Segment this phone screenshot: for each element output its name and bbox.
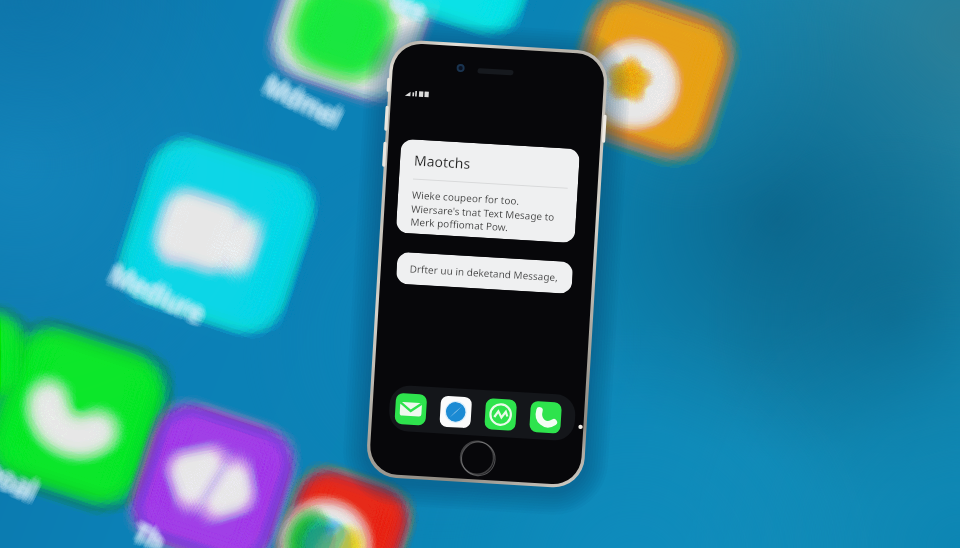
staticText: boal: [0, 456, 44, 511]
staticText: Mediure: [104, 257, 209, 331]
staticText: Mediure: [106, 250, 211, 324]
staticText: Th: [131, 514, 172, 548]
staticText: Mdmel: [261, 62, 347, 127]
button[interactable]: Drfter uu in deketand Message,: [396, 252, 573, 294]
staticText: ore: [389, 0, 431, 23]
staticText: Mediure: [106, 260, 211, 334]
staticText: Th: [126, 512, 167, 548]
staticText: boal: [0, 455, 42, 510]
staticText: ore: [385, 0, 427, 27]
staticText: boal: [0, 453, 48, 508]
staticText: Mediure: [104, 251, 209, 325]
staticText: ore: [385, 0, 427, 24]
staticText: Th: [132, 512, 173, 548]
staticText: boal: [0, 456, 40, 511]
staticText: Mediure: [103, 256, 208, 330]
staticText: boal: [0, 450, 39, 505]
staticText: Mdmel: [259, 69, 345, 134]
button[interactable]: Mdmel: [0, 0, 960, 548]
staticText: Mediure: [102, 252, 207, 326]
staticText: boal: [0, 447, 42, 502]
staticText: Mdmel: [258, 68, 344, 133]
staticText: ore: [388, 0, 430, 22]
staticText: Mdmel: [264, 64, 350, 129]
button[interactable]: Maotchs: [396, 139, 580, 243]
staticText: Mdmel: [255, 71, 341, 136]
staticText: Drfter uu in deketand Message,: [409, 261, 559, 284]
staticText: ore: [389, 0, 431, 27]
staticText: ore: [386, 0, 428, 29]
staticText: Mediure: [110, 257, 215, 331]
staticText: Mdmel: [259, 63, 345, 128]
staticText: Th: [132, 518, 173, 548]
staticText: Mediure: [102, 260, 207, 334]
staticText: boal: [0, 446, 44, 501]
staticText: ore: [391, 0, 433, 29]
staticText: Th: [129, 511, 170, 548]
staticText: Mdmel: [264, 71, 350, 136]
staticText: ore: [386, 0, 428, 26]
staticText: Mediure: [109, 255, 214, 329]
staticText: boal: [0, 452, 38, 507]
staticText: Mediure: [104, 253, 209, 327]
staticText: ore: [393, 0, 435, 27]
staticText: Mdmel: [260, 73, 346, 138]
staticText: Th: [125, 515, 166, 548]
staticText: boal: [0, 450, 43, 505]
staticText: Th: [128, 513, 169, 548]
staticText: Th: [126, 513, 167, 548]
staticText: Mediure: [102, 257, 207, 331]
staticText: Mediure: [107, 255, 212, 329]
staticText: boal: [0, 453, 42, 508]
staticText: ore: [384, 0, 426, 26]
staticText: Mediure: [101, 254, 206, 328]
staticText: Th: [124, 513, 165, 548]
staticText: Mediure: [107, 253, 212, 327]
staticText: Mediure: [105, 261, 210, 335]
staticText: Mdmel: [257, 72, 343, 137]
staticText: boal: [0, 457, 43, 512]
staticText: boal: [0, 455, 38, 510]
staticText: boal: [0, 450, 37, 505]
staticText: Th: [130, 512, 171, 548]
staticText: boal: [0, 449, 45, 504]
staticText: Mdmel: [259, 71, 345, 136]
staticText: Th: [128, 516, 169, 548]
staticText: Mdmel: [261, 72, 347, 137]
staticText: ore: [390, 0, 432, 30]
staticText: boal: [0, 451, 47, 506]
staticText: boal: [0, 449, 42, 504]
staticText: Mediure: [109, 252, 214, 326]
staticText: Maotchs: [413, 150, 471, 173]
staticText: boal: [0, 452, 44, 507]
staticText: Mdmel: [265, 69, 351, 134]
staticText: ore: [389, 0, 431, 21]
staticText: Th: [129, 519, 170, 548]
staticText: Th: [128, 517, 169, 548]
staticText: ore: [388, 0, 430, 30]
staticText: ore: [383, 0, 425, 24]
staticText: Mdmel: [259, 65, 345, 130]
staticText: ore: [391, 0, 433, 23]
staticText: Mdmel: [264, 67, 350, 132]
staticText: boal: [0, 453, 46, 508]
staticText: Th: [127, 515, 168, 548]
staticText: Mediure: [106, 258, 211, 332]
staticText: ore: [388, 0, 430, 24]
staticText: Mdmel: [256, 66, 342, 131]
staticText: boal: [0, 457, 46, 512]
staticText: Mediure: [105, 254, 210, 328]
staticText: Mdmel: [260, 66, 346, 131]
staticText: ore: [385, 0, 427, 23]
staticText: Mdmel: [257, 69, 343, 134]
staticText: Th: [125, 518, 166, 548]
staticText: ore: [387, 0, 429, 27]
staticText: Mediure: [108, 257, 213, 331]
staticText: Th: [130, 518, 171, 548]
staticText: Mediure: [99, 254, 204, 328]
staticText: boal: [0, 451, 45, 506]
staticText: Th: [131, 519, 172, 548]
staticText: Th: [134, 516, 175, 548]
staticText: boal: [0, 452, 41, 507]
staticText: Th: [126, 516, 167, 548]
